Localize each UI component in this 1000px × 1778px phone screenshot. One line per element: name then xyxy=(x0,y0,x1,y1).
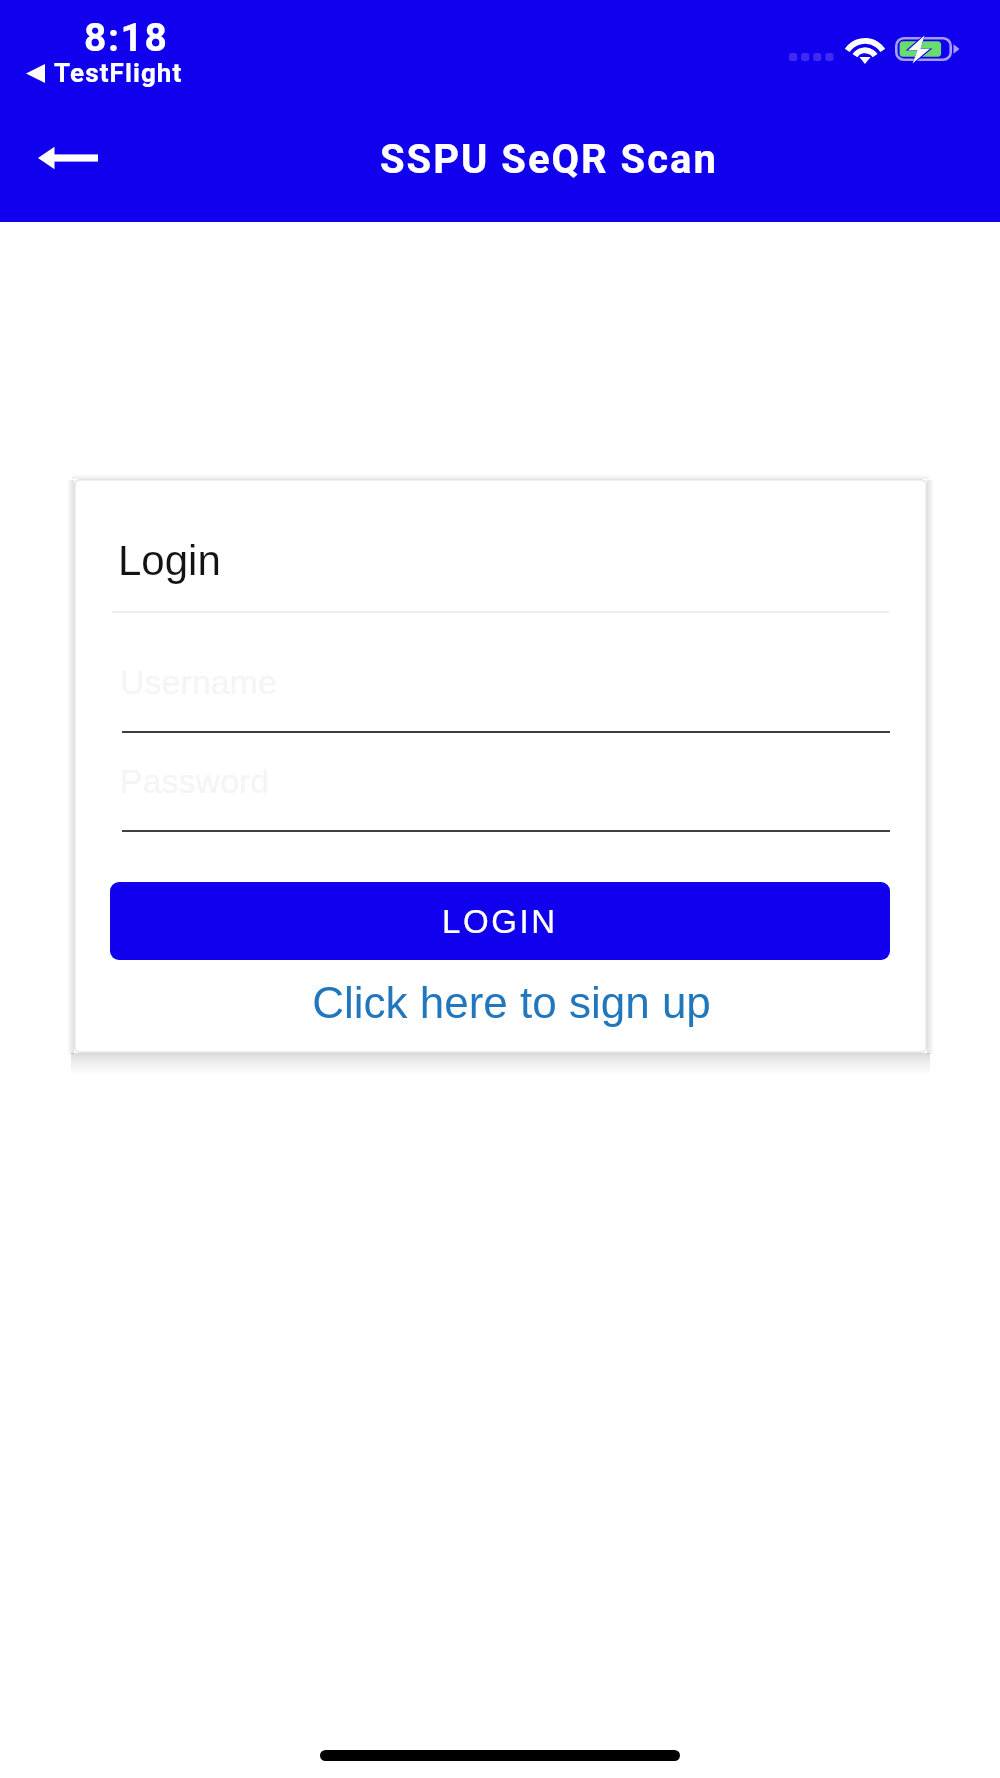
button[interactable]: LOGIN xyxy=(110,882,890,960)
staticText: 8:18 xyxy=(84,15,169,61)
button[interactable]: Username xyxy=(120,639,890,733)
staticText: SSPU SeQR Scan xyxy=(380,136,718,183)
staticText: Login xyxy=(118,537,221,584)
staticText: LOGIN xyxy=(442,903,558,940)
button[interactable]: Back xyxy=(12,111,124,205)
staticText: TestFlight xyxy=(54,58,183,88)
button[interactable]: Click here to sign up xyxy=(74,971,927,1033)
staticText: Click here to sign up xyxy=(312,978,711,1027)
button[interactable]: Password xyxy=(120,738,890,832)
staticText: Username xyxy=(120,663,277,701)
staticText: Password xyxy=(120,762,270,800)
